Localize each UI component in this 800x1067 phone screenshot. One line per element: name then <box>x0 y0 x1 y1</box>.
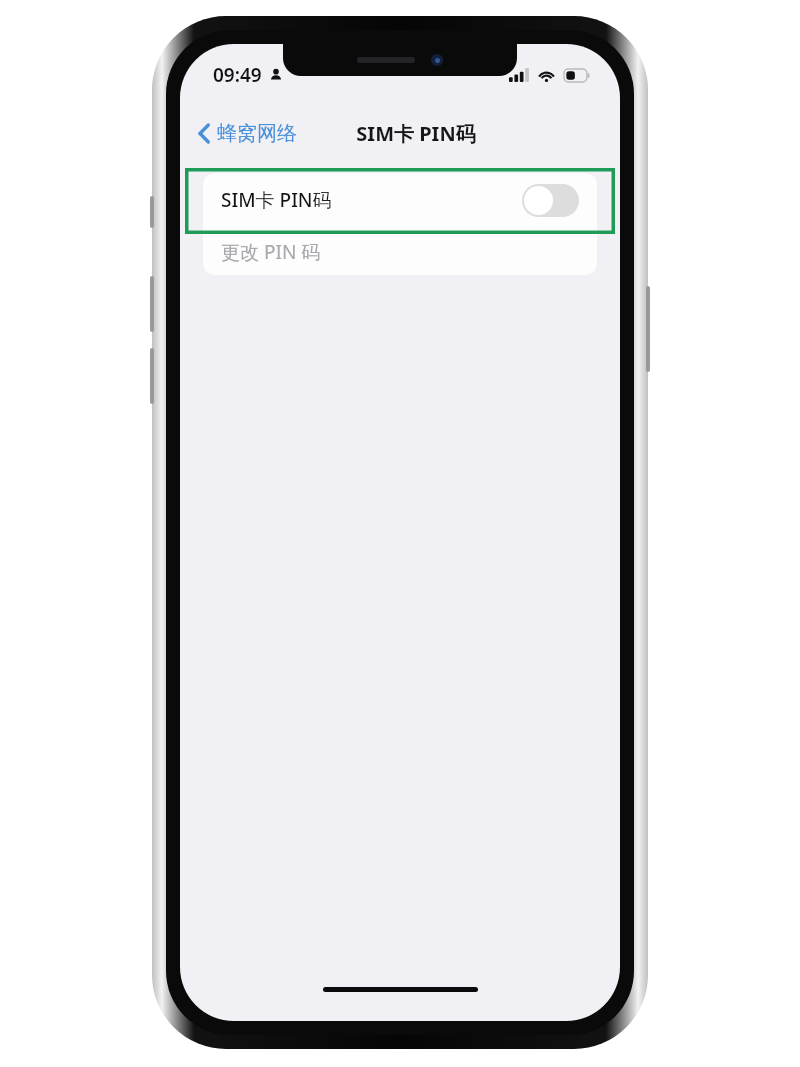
button[interactable]: SIM卡 PIN码 <box>203 173 597 227</box>
button[interactable]: 更改 PIN 码 <box>203 228 597 275</box>
staticText: SIM卡 PIN码 <box>356 120 476 147</box>
button[interactable]: 蜂窝网络 <box>190 115 305 152</box>
button[interactable]: SIM card PIN toggle, off <box>522 184 579 217</box>
staticText: 更改 PIN 码 <box>221 239 321 265</box>
staticText: 09:49 <box>213 62 262 88</box>
staticText: 蜂窝网络 <box>217 121 297 146</box>
staticText: SIM卡 PIN码 <box>221 187 332 213</box>
